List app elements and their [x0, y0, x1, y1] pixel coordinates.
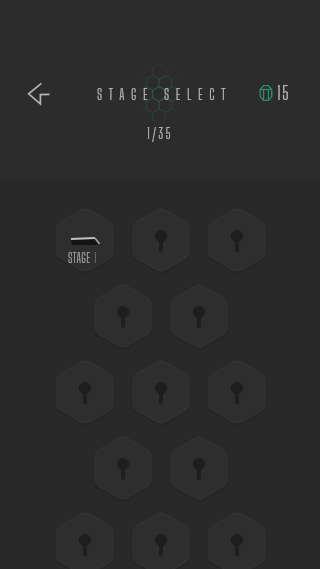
- staticText: 1: [94, 250, 97, 266]
- staticText: STAGE: [68, 250, 94, 266]
- button[interactable]: Back: [22, 76, 56, 110]
- staticText: STAGE SELECT: [97, 85, 233, 103]
- staticText: 15: [277, 82, 291, 104]
- staticText: 1/35: [147, 125, 173, 142]
